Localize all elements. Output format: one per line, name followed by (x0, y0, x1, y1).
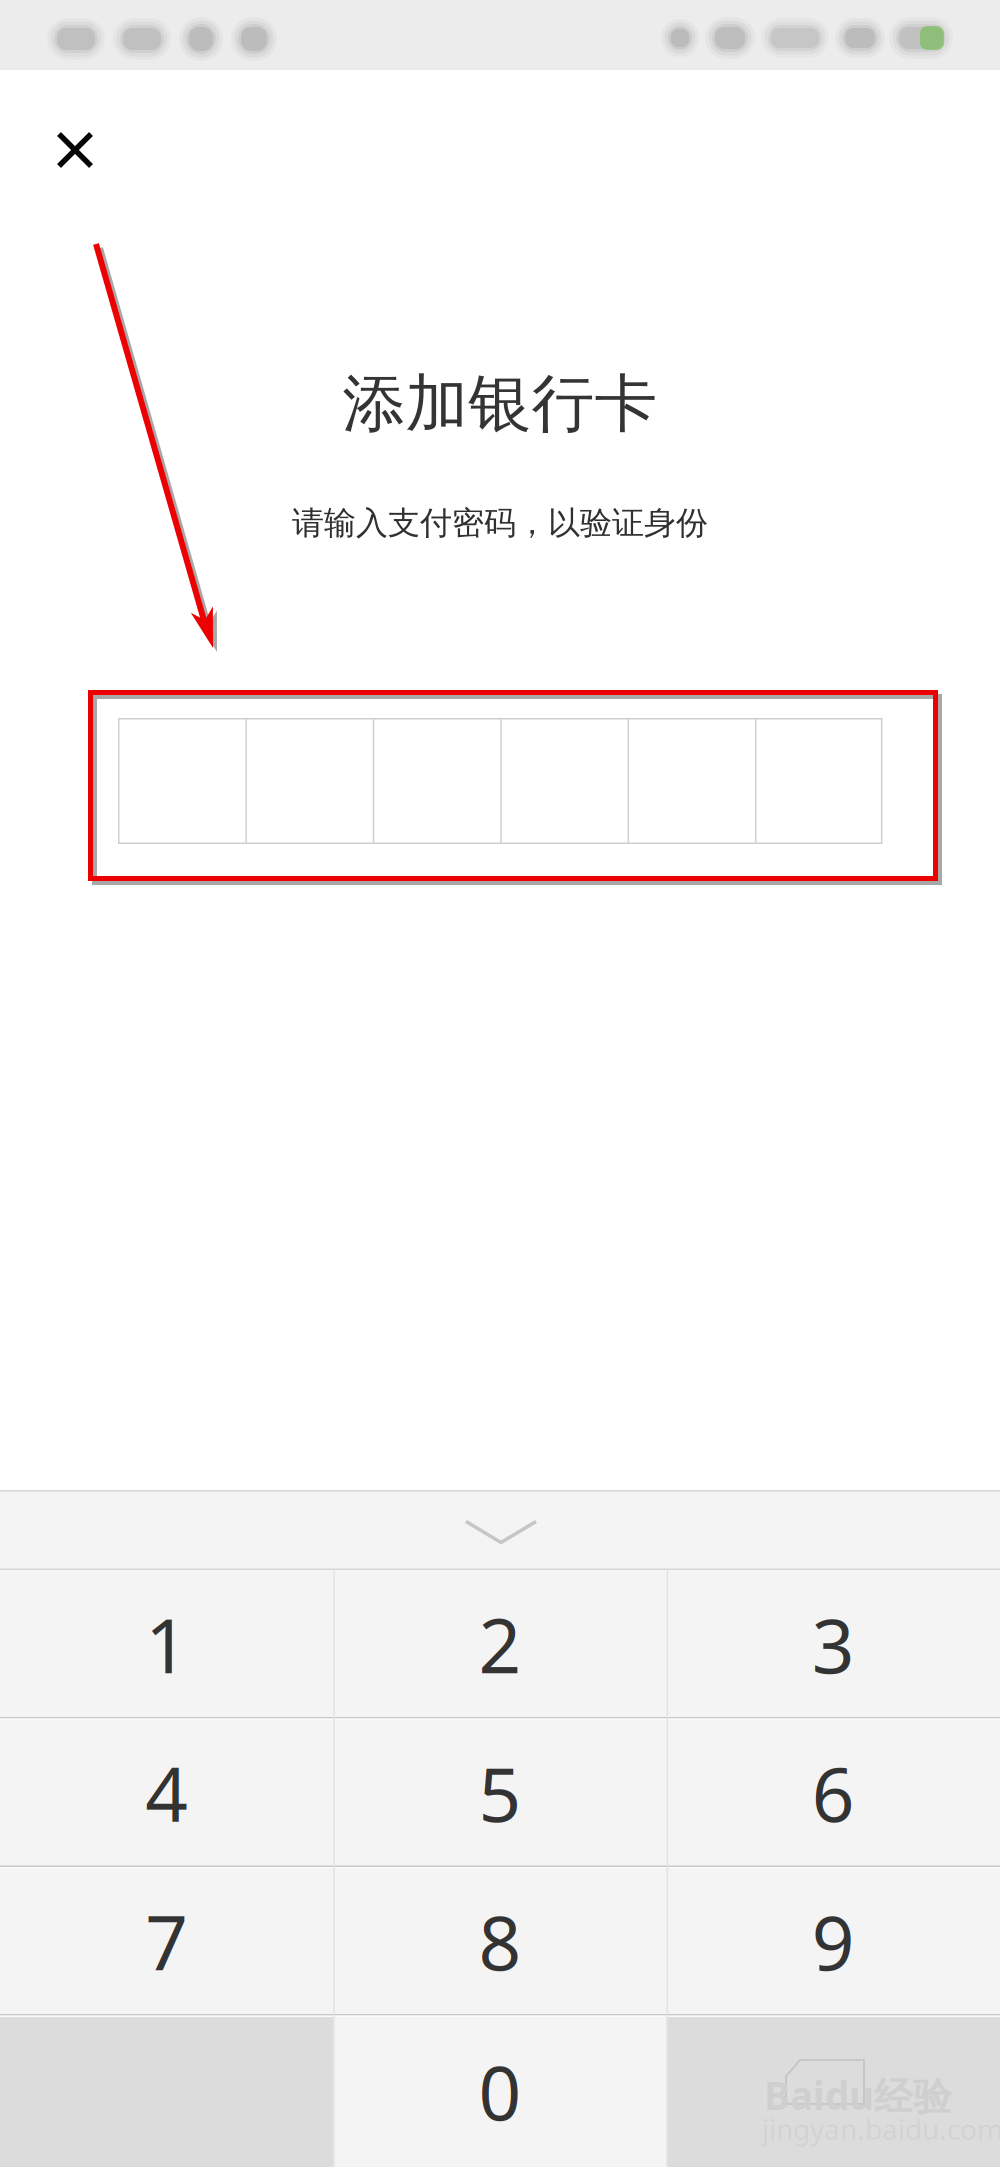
button[interactable]: 9 (667, 1867, 1000, 2015)
button[interactable]: 2 (333, 1570, 667, 1718)
button[interactable]: 7 (0, 1867, 333, 2015)
staticText: 7 (145, 1892, 188, 1991)
staticText: 3 (812, 1595, 855, 1694)
staticText: 1 (145, 1595, 188, 1694)
staticText: 5 (478, 1743, 521, 1842)
staticText: jingyan.baidu.com (762, 2110, 1000, 2148)
staticText: 9 (812, 1892, 855, 1991)
button[interactable]: 1 (0, 1570, 333, 1718)
button[interactable]: 6 (667, 1718, 1000, 1867)
staticText: 请输入支付密码，以验证身份 (292, 503, 708, 543)
staticText: 添加银行卡 (342, 365, 657, 442)
staticText: 8 (478, 1892, 521, 1991)
staticText: 2 (478, 1595, 521, 1694)
button[interactable]: 0 (333, 2015, 667, 2167)
button[interactable]: Payment password (118, 718, 882, 844)
staticText: Baidu经验 (764, 2069, 952, 2121)
button[interactable]: 3 (667, 1570, 1000, 1718)
staticText: 6 (812, 1743, 855, 1842)
staticText: 0 (478, 2042, 521, 2141)
button[interactable]: 4 (0, 1718, 333, 1867)
staticText: 4 (145, 1743, 188, 1842)
button[interactable]: Hide keyboard (426, 1495, 576, 1569)
button[interactable]: Delete (667, 2015, 1000, 2167)
button[interactable]: 5 (333, 1718, 667, 1867)
button[interactable]: Close (40, 115, 110, 185)
button[interactable]: 8 (333, 1867, 667, 2015)
